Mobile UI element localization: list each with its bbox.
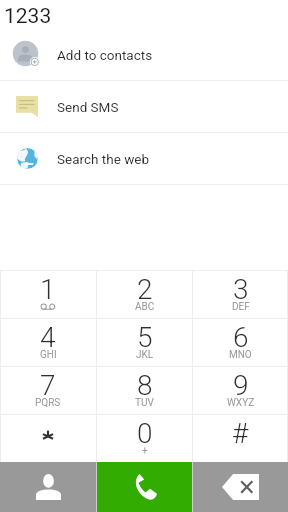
button[interactable]: 4 <box>0 319 96 366</box>
button[interactable]: # <box>193 415 288 462</box>
button[interactable]: Contacts <box>0 462 96 512</box>
staticText: JKL <box>136 349 154 361</box>
button[interactable]: Call <box>97 462 192 512</box>
staticText: MNO <box>229 349 252 361</box>
staticText: Add to contacts <box>57 47 153 63</box>
button[interactable] <box>0 415 96 462</box>
staticText: TUV <box>135 397 154 409</box>
staticText: DEF <box>232 301 250 313</box>
staticText: 7 <box>40 369 56 402</box>
button[interactable]: 6 <box>193 319 288 366</box>
staticText: 6 <box>233 321 249 354</box>
staticText: 3 <box>233 273 249 306</box>
staticText: Send SMS <box>57 99 119 115</box>
staticText: 1233 <box>4 4 52 29</box>
staticText: 1 <box>40 273 56 306</box>
button[interactable]: 5 <box>97 319 192 366</box>
button[interactable]: Backspace <box>193 462 288 512</box>
staticText: 4 <box>40 321 56 354</box>
staticText: 8 <box>137 369 153 402</box>
staticText: PQRS <box>35 397 61 409</box>
staticText: + <box>142 445 148 457</box>
staticText: GHI <box>40 349 57 361</box>
staticText: 9 <box>233 369 249 402</box>
button[interactable]: 2 <box>97 271 192 318</box>
button[interactable]: 0 <box>97 415 192 462</box>
button[interactable]: Send SMS <box>0 81 288 132</box>
button[interactable]: Add to contacts <box>0 29 288 80</box>
button[interactable]: 9 <box>193 367 288 414</box>
staticText: 2 <box>137 273 153 306</box>
staticText: WXYZ <box>227 397 255 409</box>
staticText: Search the web <box>57 151 150 167</box>
staticText: 0 <box>137 417 153 450</box>
button[interactable]: 1 <box>0 271 96 318</box>
button[interactable]: 7 <box>0 367 96 414</box>
button[interactable]: Search the web <box>0 133 288 184</box>
staticText: # <box>232 417 249 450</box>
button[interactable]: 3 <box>193 271 288 318</box>
staticText: ABC <box>135 301 155 313</box>
button[interactable]: 8 <box>97 367 192 414</box>
staticText: 5 <box>137 321 153 354</box>
